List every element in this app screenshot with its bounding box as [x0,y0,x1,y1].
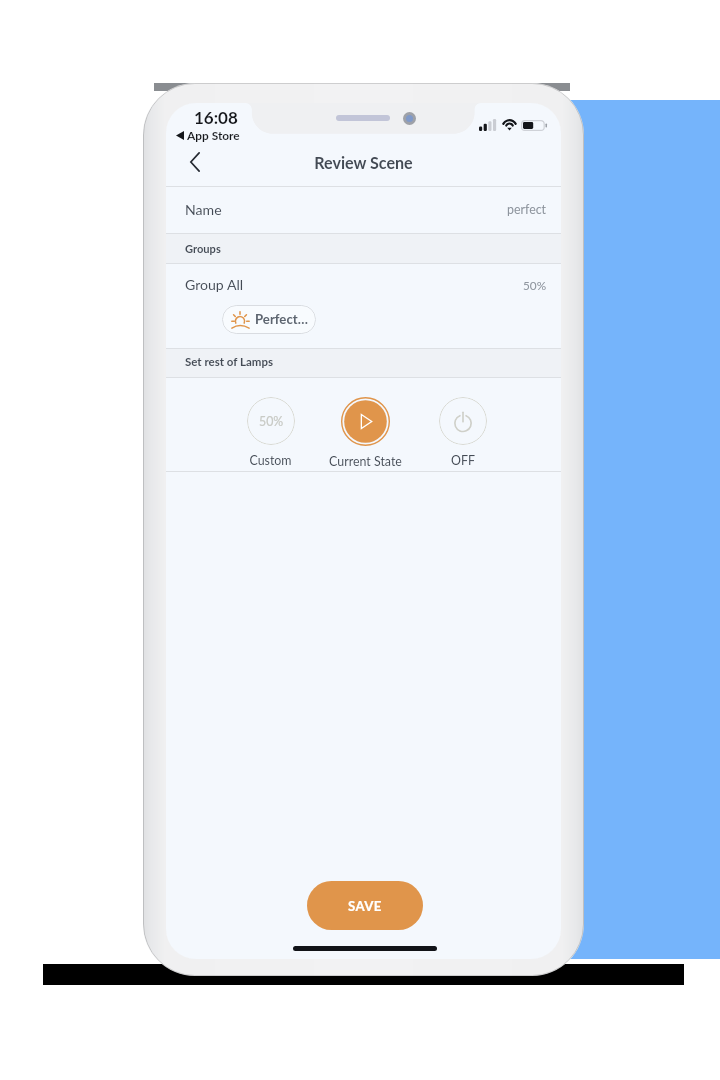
staticText: Groups [185,242,221,255]
staticText: 50% [523,278,547,292]
staticText: OFF [451,453,475,468]
staticText: 16:08 [194,107,238,127]
staticText: Perfect… [255,311,308,327]
button[interactable]: Back [171,138,219,186]
staticText: Set rest of Lamps [185,355,274,369]
staticText: 50% [259,414,284,429]
staticText: Name [185,201,222,218]
button[interactable]: Perfect… [222,305,316,334]
staticText: Review Scene [166,153,561,172]
button[interactable]: 50% [223,379,318,468]
staticText: perfect [507,202,547,217]
staticText: Custom [249,453,292,468]
staticText: SAVE [348,898,382,914]
staticText: App Store [187,128,240,142]
button[interactable]: OFF [415,379,510,468]
button[interactable]: Name [166,186,561,232]
staticText: Current State [329,454,402,469]
button[interactable]: Current State [318,379,413,469]
button[interactable]: SAVE [307,881,423,930]
button[interactable]: Group All [166,262,561,307]
staticText: Group All [185,276,244,293]
